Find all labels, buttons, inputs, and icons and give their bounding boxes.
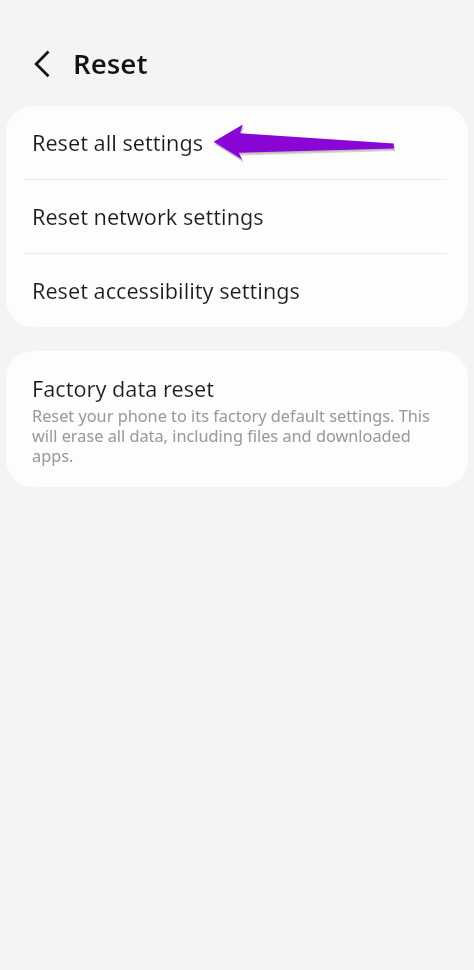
staticText: Reset your phone to its factory default … (32, 405, 456, 467)
staticText: Reset network settings (32, 202, 264, 231)
button[interactable]: Back (35, 44, 63, 80)
staticText: Reset all settings (32, 128, 204, 157)
button[interactable]: Factory data reset (6, 351, 468, 487)
staticText: Factory data reset (32, 374, 214, 403)
button[interactable]: Reset all settings (6, 106, 468, 179)
button[interactable]: Reset accessibility settings (6, 254, 468, 327)
button[interactable]: Reset network settings (6, 180, 468, 253)
staticText: Reset (73, 45, 148, 82)
staticText: Reset accessibility settings (32, 276, 300, 305)
